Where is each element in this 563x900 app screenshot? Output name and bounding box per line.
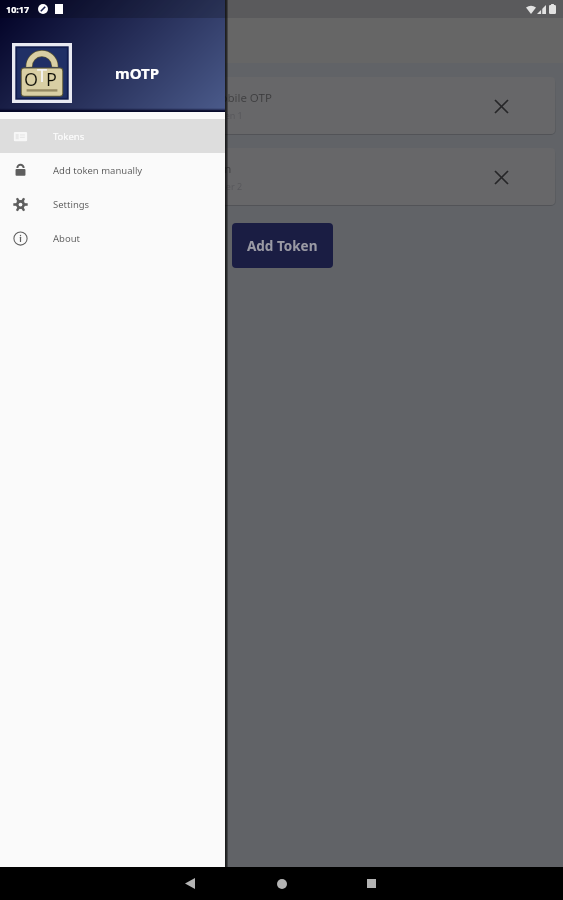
staticText: Other 2 xyxy=(210,180,243,192)
staticText: Add Token xyxy=(247,237,318,255)
button[interactable]: Tokens xyxy=(0,119,225,153)
staticText: Settings xyxy=(53,198,90,211)
staticText: About xyxy=(53,232,80,245)
button[interactable]: Add Token xyxy=(232,223,333,268)
staticText: Run xyxy=(210,161,232,177)
button[interactable]: Remove token xyxy=(484,89,518,123)
staticText: Mobile OTP xyxy=(210,90,272,106)
button[interactable]: Run xyxy=(8,148,555,205)
button[interactable]: Home xyxy=(262,867,302,900)
button[interactable]: Settings xyxy=(0,187,225,221)
button[interactable]: Add token manually xyxy=(0,153,225,187)
staticText: O xyxy=(24,67,39,92)
button[interactable]: About xyxy=(0,221,225,255)
button[interactable]: Mobile OTP xyxy=(8,77,555,134)
staticText: Add token manually xyxy=(53,164,143,177)
staticText: P xyxy=(46,67,57,92)
staticText: Token 1 xyxy=(210,109,243,121)
button[interactable]: Remove token xyxy=(484,160,518,194)
staticText: mOTP xyxy=(115,63,160,83)
staticText: Tokens xyxy=(53,130,85,143)
staticText: T xyxy=(37,63,48,88)
button[interactable]: Recent apps xyxy=(351,867,391,900)
staticText: 10:17 xyxy=(6,3,30,15)
button[interactable]: Back xyxy=(170,867,210,900)
